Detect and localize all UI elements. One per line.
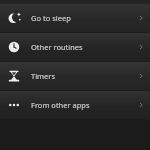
button[interactable]: From other apps bbox=[0, 91, 150, 119]
staticText: From other apps bbox=[31, 100, 90, 110]
staticText: Go to sleep bbox=[31, 13, 71, 23]
button[interactable]: Other routines bbox=[0, 33, 150, 61]
button[interactable]: Go to sleep bbox=[0, 4, 150, 32]
staticText: Other routines bbox=[31, 42, 83, 52]
button[interactable]: Timers bbox=[0, 62, 150, 90]
staticText: Timers bbox=[31, 71, 56, 81]
